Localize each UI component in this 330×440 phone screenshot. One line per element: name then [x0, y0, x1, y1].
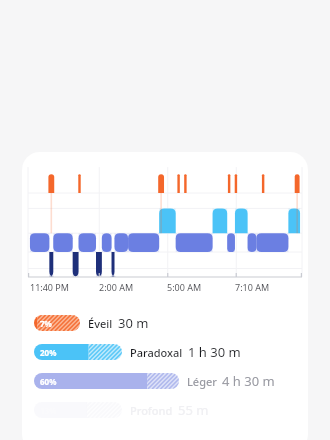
button[interactable]: 20%	[34, 343, 298, 361]
staticText: Profond	[130, 403, 173, 418]
staticText: 60%	[40, 376, 57, 387]
staticText: Paradoxal	[130, 345, 183, 360]
button[interactable]: Sleep stages chart	[22, 152, 308, 440]
staticText: 20%	[40, 347, 57, 358]
staticText: 5:00 AM	[167, 281, 235, 293]
staticText: Éveil	[88, 316, 113, 331]
staticText: 7%	[40, 318, 52, 329]
other: Sleep stages chart	[28, 160, 302, 278]
button[interactable]: 7%	[34, 314, 298, 332]
staticText: 2:00 AM	[99, 281, 167, 293]
staticText: 30 m	[118, 314, 149, 332]
staticText: Léger	[187, 374, 217, 389]
staticText: 11:40 PM	[30, 281, 99, 293]
staticText: 7:10 AM	[235, 281, 300, 293]
button[interactable]: 60%	[34, 372, 298, 390]
staticText: 55 m	[178, 401, 209, 419]
staticText: 4 h 30 m	[222, 372, 275, 390]
button[interactable]: 13%	[34, 401, 298, 419]
staticText: 1 h 30 m	[188, 343, 241, 361]
